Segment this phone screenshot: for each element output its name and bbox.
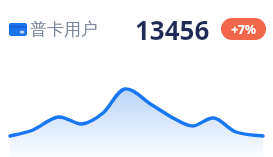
staticText: 13456 — [135, 12, 210, 47]
button[interactable]: +7% — [221, 18, 266, 40]
button[interactable]: Trend chart — [0, 58, 273, 157]
other: Card — [9, 23, 27, 36]
button[interactable]: Card — [0, 0, 273, 58]
staticText: +7% — [231, 21, 256, 37]
staticText: 普卡用户 — [30, 19, 98, 40]
